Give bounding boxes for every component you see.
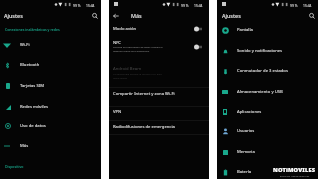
staticText: Permite el intercambio de datos cuando e… xyxy=(113,45,163,53)
staticText: Más xyxy=(20,143,29,149)
staticText: Android Beam xyxy=(113,66,142,72)
button[interactable]: Batería xyxy=(217,162,318,179)
staticText: noticias sobre moviles xyxy=(280,175,310,178)
staticText: NFC xyxy=(113,40,122,46)
staticText: Sonido y notificaciones xyxy=(237,48,283,54)
staticText: Tarjetas SIM xyxy=(20,83,44,89)
staticText: Compartir Internet y zona Wi-Fi xyxy=(113,91,175,97)
button[interactable]: Activar xyxy=(194,25,206,33)
button[interactable]: Buscar xyxy=(90,11,100,21)
button[interactable]: Wi-Fi xyxy=(0,35,101,55)
staticText: Ajustes xyxy=(4,12,23,19)
button[interactable]: Compartir Internet y zona Wi-Fi xyxy=(109,85,209,102)
button[interactable]: Tarjetas SIM xyxy=(0,76,101,96)
button[interactable]: Bluetooth xyxy=(0,55,101,75)
staticText: Radiodifusiones de emergencia xyxy=(113,124,175,130)
staticText: VPN xyxy=(113,109,122,115)
button[interactable]: Memoria xyxy=(217,142,318,162)
button[interactable]: Activar xyxy=(109,37,209,59)
staticText: Almacenamiento y USB xyxy=(237,89,283,95)
button[interactable]: Usuarios xyxy=(217,121,318,141)
button[interactable]: Más xyxy=(0,136,101,156)
staticText: Ajustes xyxy=(222,12,241,19)
button[interactable]: Sonido y notificaciones xyxy=(217,41,318,61)
button[interactable]: Uso de datos xyxy=(0,116,101,136)
staticText: Batería xyxy=(237,169,252,175)
staticText: Uso de datos xyxy=(20,123,46,129)
button[interactable]: Activar xyxy=(194,43,206,51)
button[interactable]: Conmutador de 3 estados xyxy=(217,61,318,81)
button[interactable]: Almacenamiento y USB xyxy=(217,82,318,102)
staticText: 15:44 xyxy=(86,3,95,7)
staticText: 99 % xyxy=(181,3,189,7)
button[interactable]: Redes móviles xyxy=(0,97,101,117)
staticText: Memoria xyxy=(237,149,255,155)
button[interactable]: Atrás xyxy=(111,11,120,20)
staticText: Modo avión xyxy=(113,26,137,32)
staticText: Bluetooth xyxy=(20,62,40,68)
staticText: Usuarios xyxy=(237,128,255,134)
button[interactable]: VPN xyxy=(109,103,209,120)
staticText: 15:44 xyxy=(303,3,312,7)
staticText: Aplicaciones xyxy=(237,109,262,115)
staticText: Pantalla xyxy=(237,27,253,33)
staticText: No disponible porque la función NFC está… xyxy=(113,72,162,80)
button[interactable]: Pantalla xyxy=(217,20,318,40)
staticText: Conexiones inalámbricas y redes xyxy=(5,27,60,32)
staticText: Dispositivo xyxy=(5,164,24,169)
staticText: 15:44 xyxy=(194,3,203,7)
button[interactable]: Radiodifusiones de emergencia xyxy=(109,118,209,135)
staticText: 99 % xyxy=(73,3,81,7)
button[interactable]: Aplicaciones xyxy=(217,102,318,122)
staticText: Wi-Fi xyxy=(20,42,30,48)
button[interactable]: Modo avión xyxy=(109,21,209,37)
button[interactable]: Buscar xyxy=(307,11,317,21)
staticText: 99 % xyxy=(290,3,298,7)
staticText: Redes móviles xyxy=(20,104,49,110)
staticText: Más xyxy=(131,12,142,19)
staticText: NOTiMOVILES xyxy=(273,166,316,174)
staticText: Conmutador de 3 estados xyxy=(237,68,288,74)
